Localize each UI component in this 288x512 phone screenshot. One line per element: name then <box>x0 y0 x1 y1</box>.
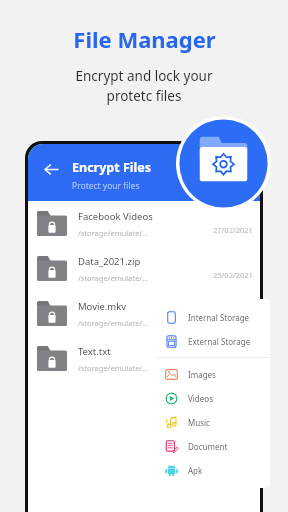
staticText: Encrypt and lock your protetc files <box>75 67 213 105</box>
staticText: Document <box>188 441 228 452</box>
staticText: Protect your files <box>72 180 140 192</box>
staticText: 27/02/2021 <box>213 225 253 235</box>
button[interactable]: Text.txt <box>28 336 260 381</box>
staticText: Encrypt Files <box>72 159 151 176</box>
staticText: /storage/emulate/... <box>78 228 149 238</box>
button[interactable]: Movie.mkv <box>28 291 260 336</box>
button[interactable]: Apk <box>156 458 270 482</box>
button[interactable]: Facebook Videos <box>28 201 260 246</box>
button[interactable]: Settings <box>176 116 271 211</box>
staticText: External Storage <box>188 336 251 347</box>
staticText: Images <box>188 369 216 380</box>
staticText: File Manager <box>73 24 216 54</box>
button[interactable]: Images <box>156 362 270 386</box>
button[interactable]: Data_2021.zip <box>28 246 260 291</box>
button[interactable]: Back <box>41 159 61 179</box>
staticText: Data_2021.zip <box>78 255 141 268</box>
button[interactable]: Internal Storage <box>156 305 270 329</box>
staticText: Movie.mkv <box>78 300 127 313</box>
button[interactable]: Videos <box>156 386 270 410</box>
staticText: /storage/emulate/... <box>78 363 149 373</box>
button[interactable]: Music <box>156 410 270 434</box>
staticText: Text.txt <box>78 345 111 358</box>
staticText: Facebook Videos <box>78 210 153 223</box>
staticText: Apk <box>188 465 203 476</box>
staticText: Music <box>188 417 210 428</box>
staticText: 25/02/2021 <box>213 270 253 280</box>
staticText: /storage/emulate/... <box>78 318 149 328</box>
button[interactable]: Document <box>156 434 270 458</box>
staticText: /storage/emulate/... <box>78 273 149 283</box>
staticText: Videos <box>188 393 213 404</box>
staticText: Internal Storage <box>188 312 250 323</box>
button[interactable]: External Storage <box>156 329 270 353</box>
